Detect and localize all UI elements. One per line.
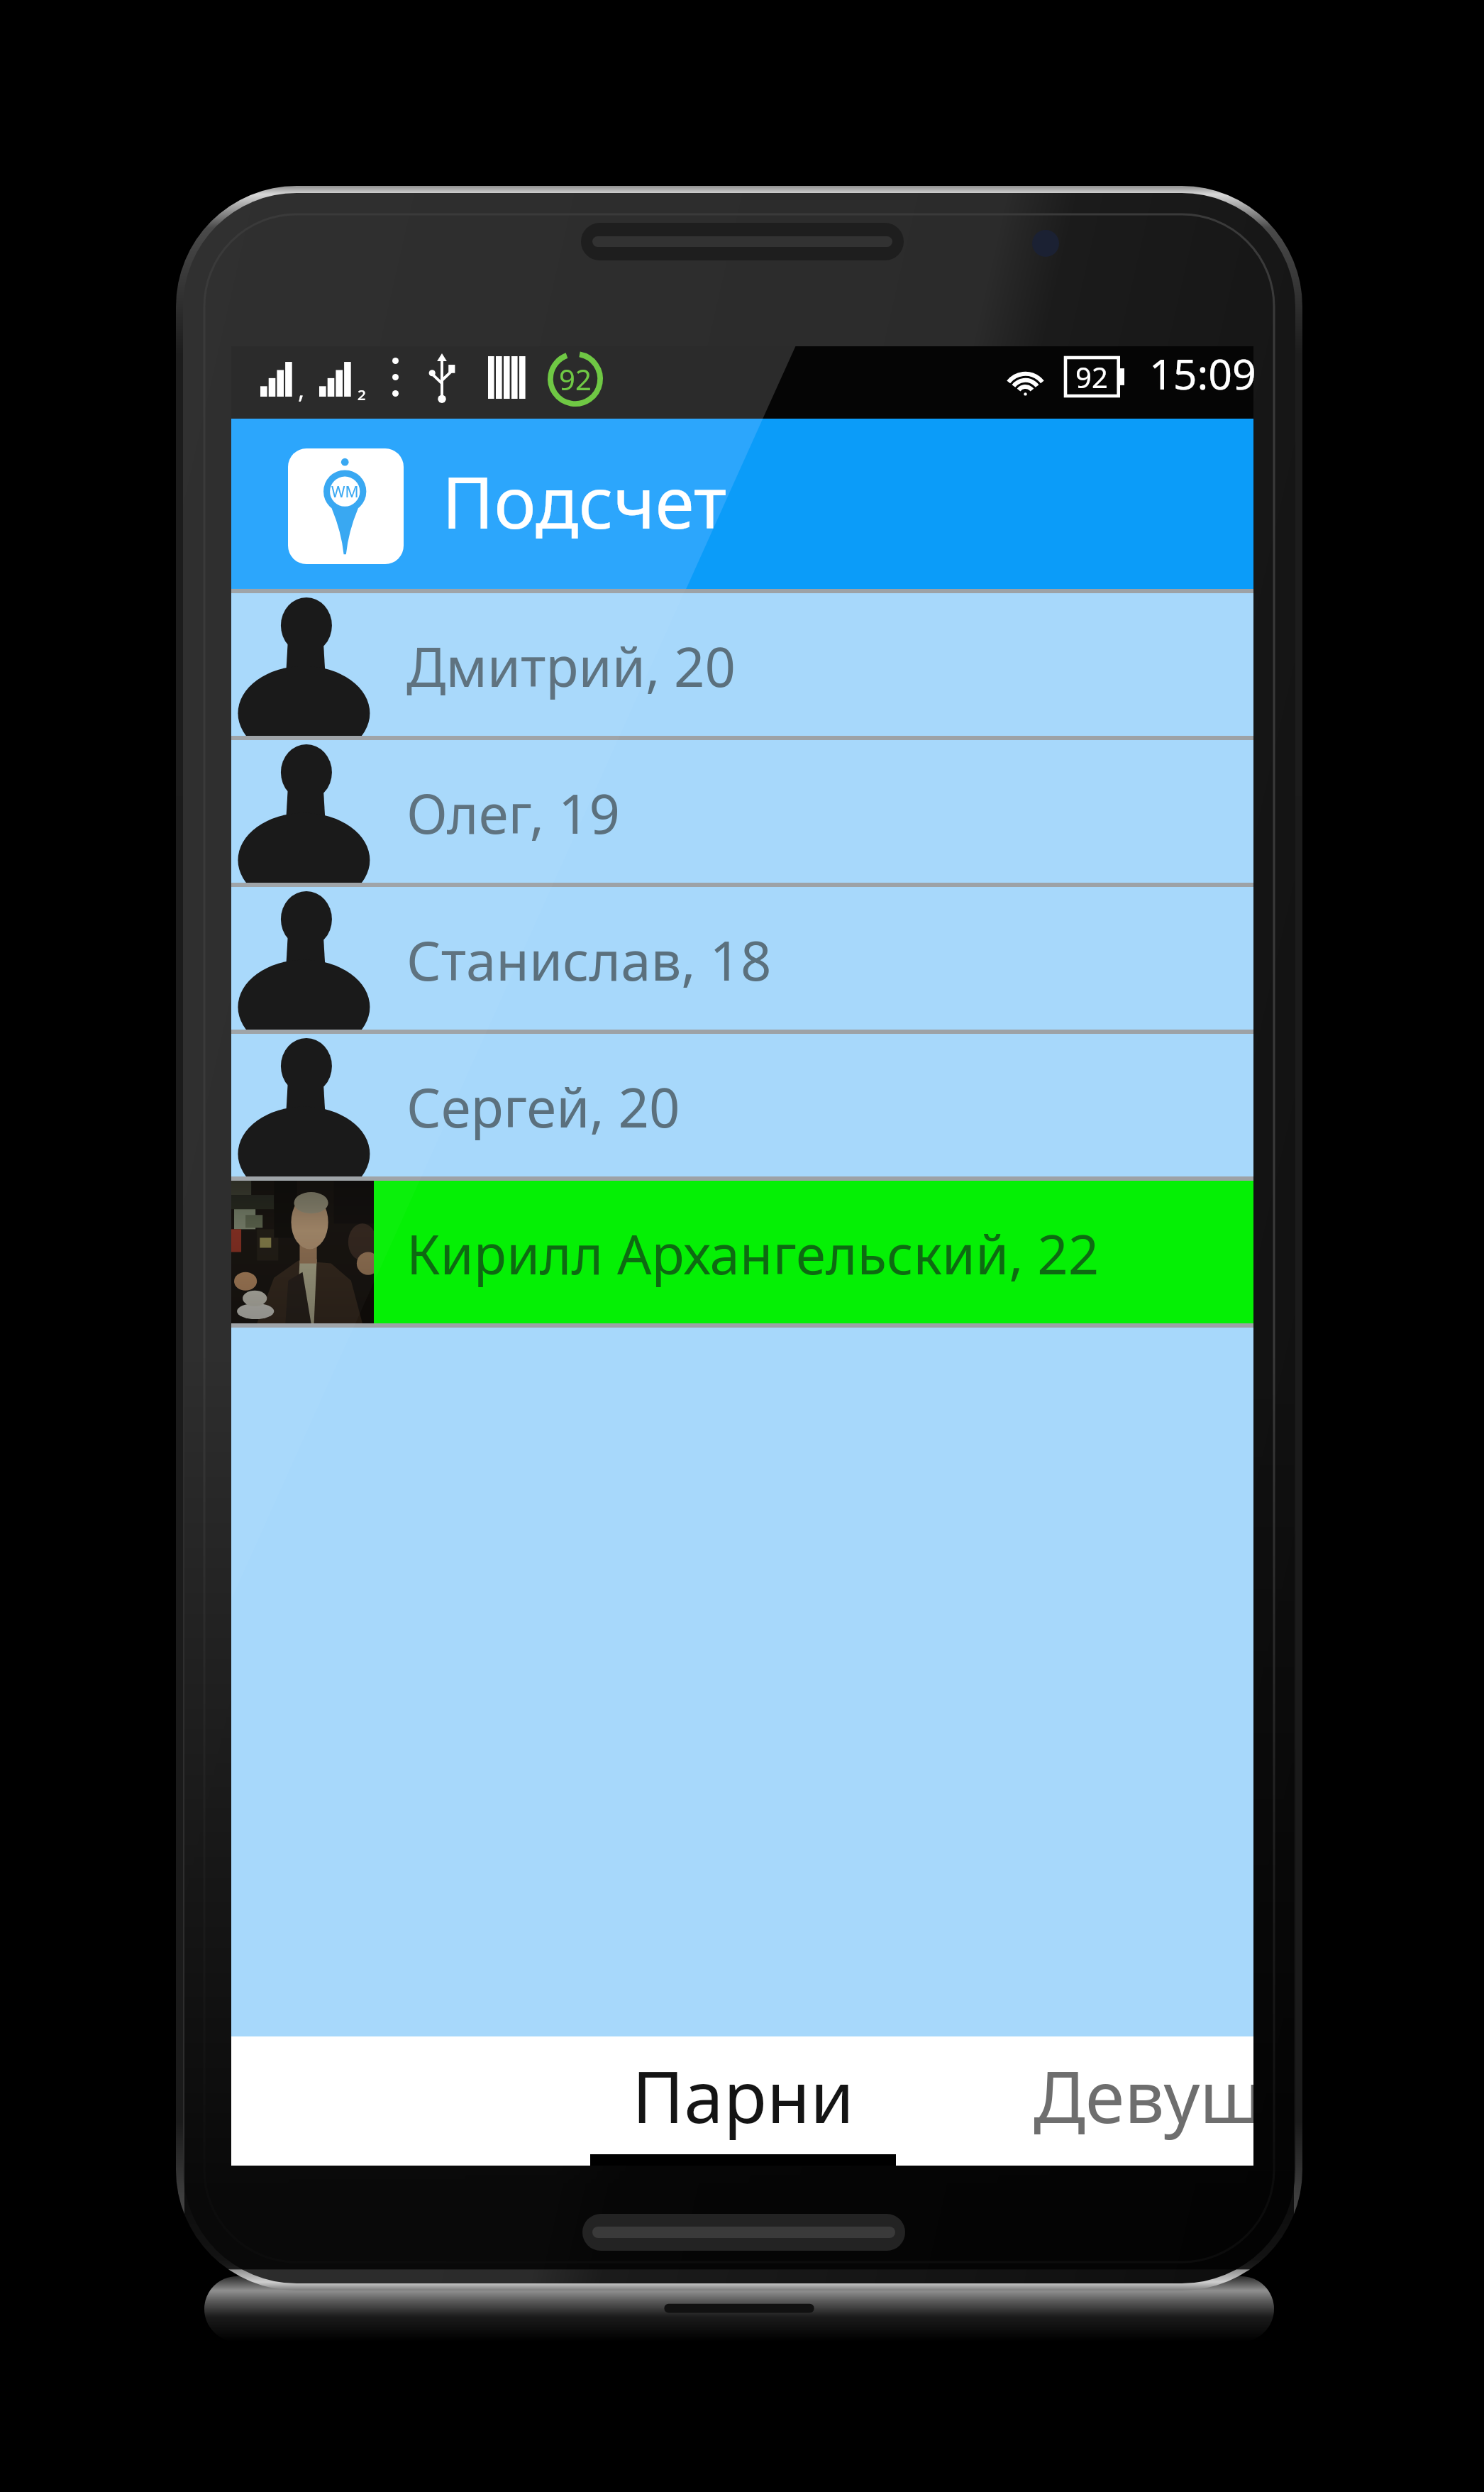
staticText: Девушки: [1034, 2047, 1253, 2144]
button[interactable]: Олег, 19: [231, 740, 1253, 883]
button[interactable]: Дмитрий, 20: [231, 593, 1253, 736]
staticText: Олег, 19: [406, 776, 620, 850]
staticText: 92: [1075, 358, 1108, 396]
staticText: Дмитрий, 20: [406, 629, 736, 703]
staticText: ₂: [358, 372, 366, 404]
staticText: WM: [331, 482, 359, 502]
staticText: Кирилл Архангельский, 22: [406, 1217, 1100, 1291]
staticText: Подсчет: [442, 453, 727, 549]
staticText: Станислав, 18: [406, 923, 772, 997]
staticText: 92: [559, 360, 592, 398]
button[interactable]: Девушки: [1034, 2036, 1253, 2166]
button[interactable]: Сергей, 20: [231, 1034, 1253, 1176]
button[interactable]: App logo: [288, 448, 404, 564]
staticText: Сергей, 20: [406, 1070, 680, 1144]
staticText: 15:09: [1149, 345, 1256, 402]
staticText: Парни: [632, 2047, 855, 2144]
staticText: ,: [298, 373, 305, 406]
button[interactable]: Станислав, 18: [231, 887, 1253, 1030]
button[interactable]: Парни: [590, 2036, 896, 2166]
button[interactable]: Кирилл Архангельский, 22: [231, 1181, 1253, 1323]
